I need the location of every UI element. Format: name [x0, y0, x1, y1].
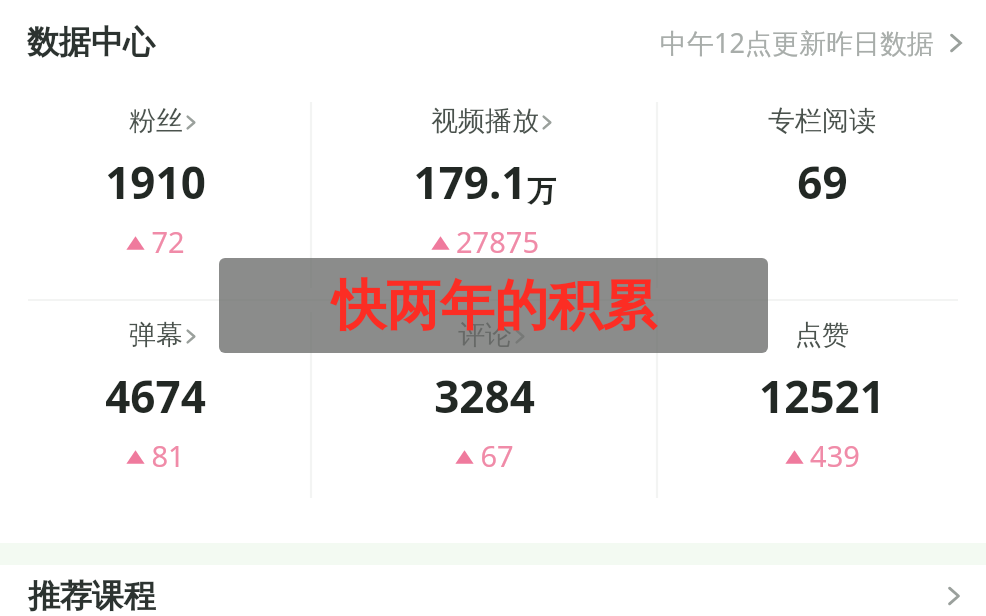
- staticText: 快两年的积累: [332, 272, 656, 340]
- staticText: 专栏阅读: [768, 104, 876, 138]
- button[interactable]: 弹幕: [105, 318, 206, 475]
- staticText: 1910: [105, 152, 206, 212]
- button[interactable]: 点赞: [759, 318, 885, 475]
- staticText: 12521: [759, 366, 885, 426]
- staticText: 推荐课程: [28, 576, 156, 616]
- staticText: 81: [151, 436, 185, 475]
- staticText: 视频播放: [431, 104, 539, 138]
- staticText: 27875: [456, 222, 539, 261]
- staticText: 67: [480, 436, 514, 475]
- button[interactable]: 视频播放: [413, 104, 556, 261]
- staticText: 72: [151, 222, 185, 261]
- button[interactable]: 粉丝: [105, 104, 206, 261]
- staticText: 69: [797, 152, 848, 212]
- staticText: 点赞: [795, 318, 849, 352]
- staticText: 439: [810, 436, 860, 475]
- staticText: 万: [527, 173, 556, 210]
- staticText: 数据中心: [27, 22, 155, 62]
- staticText: 中午12点更新昨日数据: [660, 24, 934, 61]
- staticText: 4674: [105, 366, 206, 426]
- button[interactable]: 专栏阅读: [768, 104, 876, 252]
- button[interactable]: 评论: [434, 318, 535, 475]
- staticText: 3284: [434, 366, 535, 426]
- staticText: 评论: [458, 318, 512, 352]
- button[interactable]: 中午12点更新昨日数据: [660, 24, 964, 61]
- staticText: 179.1: [413, 152, 527, 212]
- staticText: 粉丝: [129, 104, 183, 138]
- staticText: 弹幕: [129, 318, 183, 352]
